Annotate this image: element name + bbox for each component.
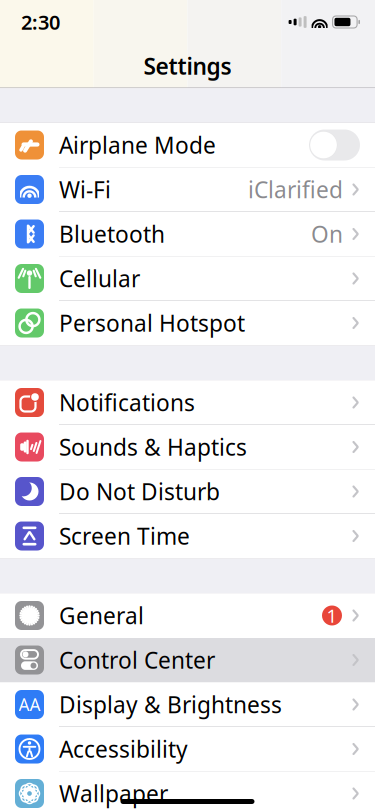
button[interactable]: Cellular xyxy=(0,256,375,301)
button[interactable]: Wi-Fi xyxy=(0,167,375,212)
button[interactable]: Wallpaper xyxy=(0,771,375,812)
button[interactable]: Airplane Mode xyxy=(0,123,375,167)
button[interactable]: Bluetooth xyxy=(0,212,375,256)
button[interactable]: AA xyxy=(0,682,375,727)
staticText: On xyxy=(311,219,343,249)
staticText: 2:30 xyxy=(21,9,60,35)
staticText: Wi-Fi xyxy=(59,174,111,204)
staticText: Bluetooth xyxy=(59,219,165,249)
button[interactable]: Notifications xyxy=(0,380,375,425)
button[interactable]: Accessibility xyxy=(0,727,375,771)
staticText: iClarified xyxy=(248,174,343,204)
button[interactable]: Personal Hotspot xyxy=(0,301,375,345)
staticText: Accessibility xyxy=(59,734,188,764)
staticText: 1 xyxy=(326,603,337,628)
staticText: Notifications xyxy=(59,387,195,417)
staticText: Settings xyxy=(143,51,231,81)
staticText: Airplane Mode xyxy=(59,130,216,160)
staticText: Sounds & Haptics xyxy=(59,432,247,462)
staticText: Screen Time xyxy=(59,521,190,551)
button[interactable]: General xyxy=(0,593,375,638)
staticText: Display & Brightness xyxy=(59,689,282,719)
staticText: Control Center xyxy=(59,645,215,675)
staticText: Do Not Disturb xyxy=(59,476,220,506)
button[interactable]: Do Not Disturb xyxy=(0,469,375,514)
staticText: Cellular xyxy=(59,263,140,293)
staticText: AA xyxy=(18,693,40,716)
staticText: Wallpaper xyxy=(59,778,168,808)
button[interactable]: Sounds & Haptics xyxy=(0,425,375,469)
button[interactable]: Control Center xyxy=(0,638,375,682)
staticText: General xyxy=(59,600,144,630)
staticText: Personal Hotspot xyxy=(59,308,245,338)
button[interactable]: Screen Time xyxy=(0,514,375,558)
